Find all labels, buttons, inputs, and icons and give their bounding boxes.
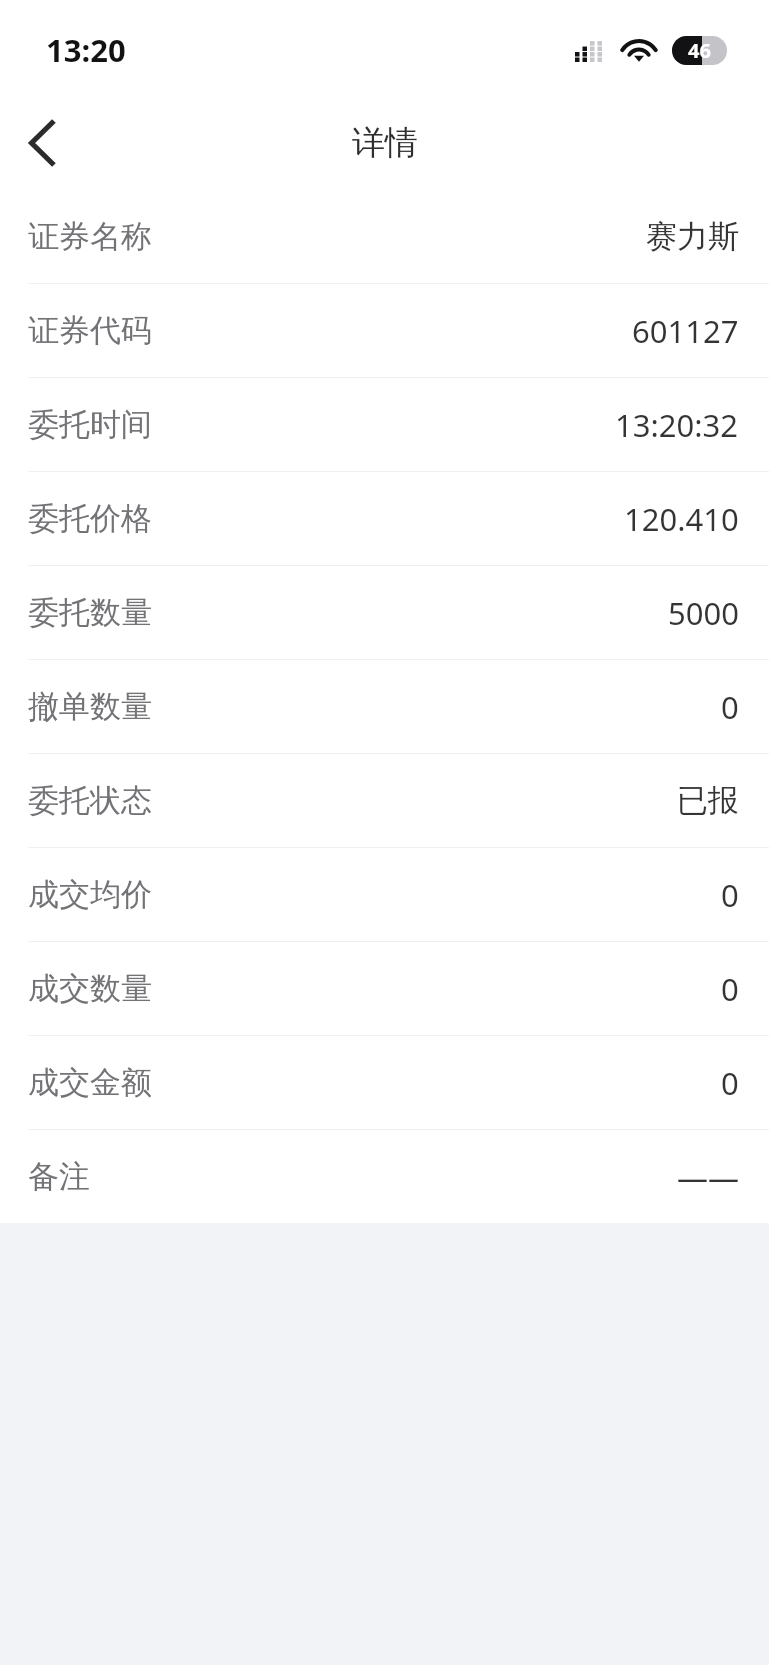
staticText: ——: [677, 1156, 739, 1198]
staticText: 5000: [668, 592, 739, 634]
button[interactable]: 撤单数量: [0, 660, 769, 753]
staticText: 46: [688, 37, 711, 64]
button[interactable]: 委托数量: [0, 566, 769, 659]
staticText: 委托价格: [28, 499, 152, 538]
staticText: 成交金额: [28, 1063, 152, 1102]
button[interactable]: 委托价格: [0, 472, 769, 565]
staticText: 601127: [632, 310, 739, 352]
button[interactable]: 委托状态: [0, 754, 769, 847]
button[interactable]: 成交均价: [0, 848, 769, 941]
staticText: 13:20:32: [615, 404, 739, 446]
button[interactable]: 成交金额: [0, 1036, 769, 1129]
button[interactable]: 成交数量: [0, 942, 769, 1035]
staticText: 撤单数量: [28, 687, 152, 726]
staticText: 已报: [677, 781, 739, 820]
staticText: 详情: [352, 122, 418, 164]
staticText: 证券代码: [28, 311, 152, 350]
staticText: 委托状态: [28, 781, 152, 820]
button[interactable]: 返回: [0, 96, 86, 190]
staticText: 证券名称: [28, 217, 152, 256]
staticText: 备注: [28, 1157, 90, 1196]
button[interactable]: 证券代码: [0, 284, 769, 377]
staticText: 0: [721, 686, 739, 728]
staticText: 赛力斯: [646, 217, 739, 256]
staticText: 0: [721, 968, 739, 1010]
staticText: 委托数量: [28, 593, 152, 632]
staticText: 13:20: [46, 29, 126, 71]
staticText: 委托时间: [28, 405, 152, 444]
staticText: 120.410: [624, 498, 739, 540]
staticText: 成交数量: [28, 969, 152, 1008]
button[interactable]: 委托时间: [0, 378, 769, 471]
staticText: 成交均价: [28, 875, 152, 914]
button[interactable]: 备注: [0, 1130, 769, 1223]
staticText: 0: [721, 1062, 739, 1104]
staticText: 0: [721, 874, 739, 916]
button[interactable]: 证券名称: [0, 190, 769, 283]
